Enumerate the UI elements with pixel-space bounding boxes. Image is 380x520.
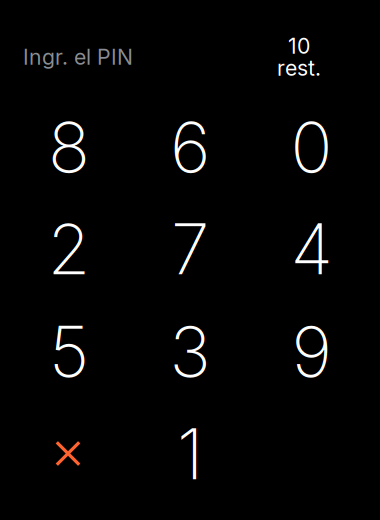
staticText: 4: [290, 207, 332, 291]
staticText: 5: [49, 310, 89, 393]
staticText: 2: [47, 207, 90, 291]
staticText: 0: [290, 105, 332, 189]
button[interactable]: Delete: [6, 403, 132, 505]
staticText: 8: [48, 105, 90, 189]
staticText: 3: [169, 310, 210, 393]
button[interactable]: 8: [6, 96, 132, 198]
button[interactable]: 5: [6, 300, 132, 403]
button[interactable]: 1: [127, 403, 253, 505]
staticText: 10: [288, 33, 310, 59]
button[interactable]: 3: [127, 300, 253, 403]
button[interactable]: 9: [248, 300, 375, 403]
staticText: 7: [171, 207, 209, 291]
button[interactable]: 2: [6, 198, 132, 300]
button[interactable]: 6: [127, 96, 253, 198]
button[interactable]: 7: [127, 198, 253, 300]
staticText: 6: [170, 105, 210, 189]
staticText: 1: [177, 412, 203, 496]
button[interactable]: 4: [248, 198, 375, 300]
staticText: rest.: [277, 55, 321, 81]
staticText: Ingr. el PIN: [23, 44, 133, 70]
staticText: 9: [291, 310, 331, 393]
button[interactable]: 0: [248, 96, 375, 198]
